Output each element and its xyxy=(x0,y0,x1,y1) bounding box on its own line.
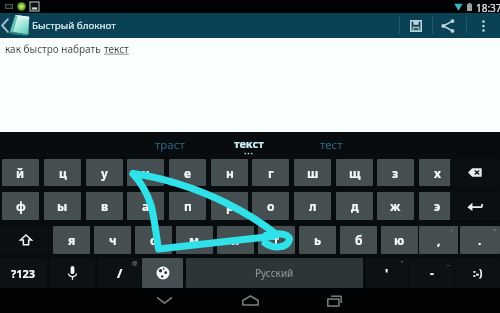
button[interactable]: ?123 xyxy=(0,258,47,288)
staticText: в xyxy=(101,198,109,214)
button[interactable]: ь xyxy=(299,226,336,254)
button[interactable]: ю xyxy=(381,226,418,254)
staticText: , xyxy=(437,232,441,248)
button[interactable]: - xyxy=(409,258,454,288)
staticText: п xyxy=(184,198,192,214)
staticText: т xyxy=(273,232,280,248)
staticText: д xyxy=(351,198,359,214)
staticText: текст xyxy=(104,42,129,56)
button[interactable]: Home xyxy=(226,288,274,313)
staticText: м xyxy=(189,232,200,248)
button[interactable]: г xyxy=(252,159,289,186)
staticText: ш xyxy=(307,165,319,181)
staticText: ц xyxy=(59,165,67,181)
staticText: ь xyxy=(314,232,322,248)
button[interactable]: тест xyxy=(290,132,373,158)
staticText: с xyxy=(150,232,157,248)
staticText: _ xyxy=(447,259,450,267)
button[interactable]: Hide keyboard xyxy=(140,288,188,313)
staticText: я xyxy=(68,232,76,248)
staticText: :-) xyxy=(473,266,483,280)
button[interactable]: к xyxy=(127,159,164,186)
button[interactable]: б xyxy=(340,226,377,254)
button[interactable]: Save xyxy=(402,13,430,38)
staticText: тест xyxy=(320,137,343,153)
staticText: э xyxy=(434,198,441,214)
staticText: как быстро набрать xyxy=(5,42,104,56)
button[interactable]: р xyxy=(211,192,248,220)
button[interactable]: х xyxy=(419,159,456,186)
button[interactable]: . xyxy=(460,226,500,254)
staticText: х xyxy=(434,165,441,181)
staticText: щ xyxy=(349,165,361,181)
button[interactable]: ж xyxy=(377,192,414,220)
button[interactable]: т xyxy=(258,226,295,254)
staticText: ! xyxy=(451,227,453,235)
button[interactable]: ч xyxy=(94,226,131,254)
staticText: у xyxy=(101,165,108,181)
button[interactable]: з xyxy=(377,159,414,186)
staticText: ' xyxy=(385,265,389,281)
staticText: Русский xyxy=(255,266,294,280)
button[interactable]: н xyxy=(211,159,248,186)
button[interactable]: э xyxy=(419,192,456,220)
staticText: 18:37 xyxy=(476,1,500,14)
button[interactable]: More options xyxy=(469,13,497,38)
button[interactable]: текст xyxy=(207,132,290,158)
staticText: е xyxy=(184,165,192,181)
button[interactable]: :-) xyxy=(455,258,500,288)
button[interactable]: Enter xyxy=(450,192,500,220)
button[interactable]: и xyxy=(217,226,254,254)
button[interactable]: ы xyxy=(44,192,81,220)
button[interactable]: а xyxy=(127,192,164,220)
button[interactable]: л xyxy=(294,192,331,220)
button[interactable]: траст xyxy=(124,132,207,158)
staticText: ю xyxy=(394,232,405,248)
staticText: " xyxy=(401,259,404,267)
button[interactable]: Voice input xyxy=(50,258,95,288)
button[interactable]: о xyxy=(252,192,289,220)
button[interactable]: Space xyxy=(186,258,363,288)
button[interactable]: д xyxy=(336,192,373,220)
button[interactable]: е xyxy=(169,159,206,186)
staticText: а xyxy=(142,198,150,214)
button[interactable]: щ xyxy=(336,159,373,186)
staticText: . xyxy=(478,232,482,248)
button[interactable]: / xyxy=(98,258,141,288)
staticText: з xyxy=(392,165,399,181)
staticText: траст xyxy=(155,137,185,153)
button[interactable]: Navigate up xyxy=(0,13,31,38)
button[interactable]: й xyxy=(2,159,39,186)
button[interactable]: ш xyxy=(294,159,331,186)
staticText: р xyxy=(226,198,234,214)
button[interactable]: ф xyxy=(2,192,39,220)
button[interactable]: п xyxy=(169,192,206,220)
button[interactable]: , xyxy=(419,226,458,254)
button[interactable]: с xyxy=(135,226,172,254)
button[interactable]: в xyxy=(86,192,123,220)
button[interactable]: Change input language xyxy=(142,258,183,288)
staticText: г xyxy=(268,165,274,181)
button[interactable]: ц xyxy=(44,159,81,186)
button[interactable]: у xyxy=(86,159,123,186)
button[interactable]: ' xyxy=(366,258,408,288)
button[interactable]: Recent apps xyxy=(310,288,358,313)
staticText: текст xyxy=(234,136,264,151)
staticText: к xyxy=(142,165,150,181)
button[interactable]: м xyxy=(176,226,213,254)
staticText: @ xyxy=(132,259,138,267)
staticText: ж xyxy=(390,198,401,214)
button[interactable]: Backspace xyxy=(450,159,500,186)
button[interactable]: Share xyxy=(434,13,462,38)
staticText: ч xyxy=(109,232,117,248)
staticText: б xyxy=(355,232,363,248)
staticText: Быстрый блокнот xyxy=(32,19,116,32)
staticText: ф xyxy=(16,198,26,214)
button[interactable]: Shift xyxy=(0,226,52,254)
staticText: н xyxy=(226,165,234,181)
staticText: й xyxy=(16,165,25,181)
staticText: о xyxy=(267,198,275,214)
staticText: / xyxy=(117,264,123,282)
button[interactable]: я xyxy=(53,226,90,254)
staticText: - xyxy=(430,265,434,281)
